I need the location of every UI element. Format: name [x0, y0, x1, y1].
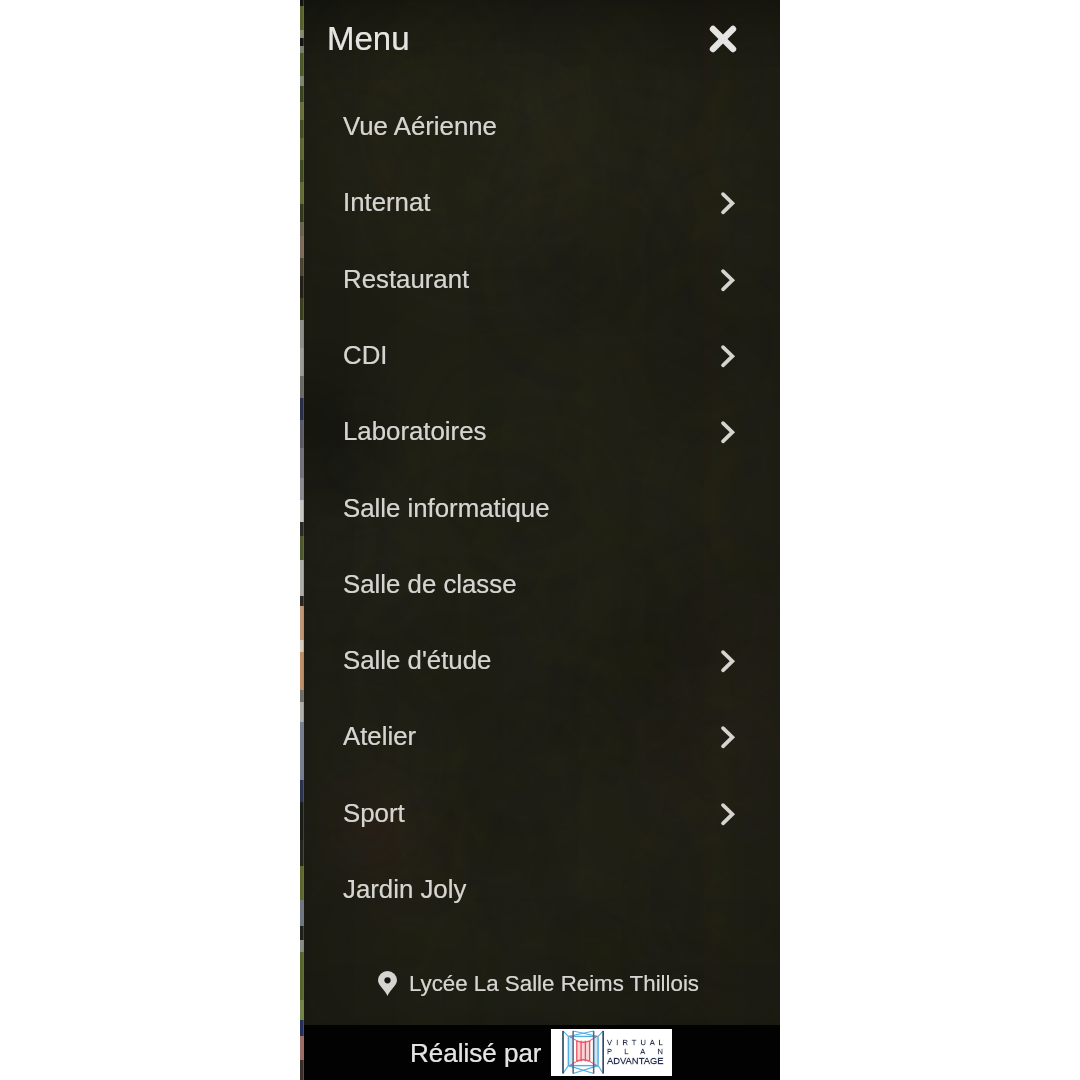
button[interactable]: Salle informatique — [304, 478, 780, 538]
staticText: Menu — [327, 20, 410, 57]
staticText: Laboratoires — [343, 417, 487, 446]
staticText: Lycée La Salle Reims Thillois — [409, 971, 699, 996]
staticText: Vue Aérienne — [343, 112, 497, 141]
staticText: P L A N — [607, 1047, 663, 1055]
button[interactable]: Virtual Plan Advantage — [551, 1029, 672, 1076]
button[interactable]: Vue Aérienne — [304, 96, 780, 156]
staticText: Jardin Joly — [343, 875, 467, 904]
staticText: Salle d'étude — [343, 646, 492, 675]
staticText: Réalisé par — [410, 1038, 542, 1067]
staticText: V I R T U A L — [607, 1038, 663, 1046]
button[interactable]: Laboratoires — [304, 401, 780, 461]
button[interactable]: Fermer le menu — [697, 13, 749, 65]
button[interactable]: Salle d'étude — [304, 630, 780, 690]
staticText: Sport — [343, 799, 405, 828]
staticText: Salle informatique — [343, 494, 550, 523]
staticText: Internat — [343, 188, 431, 217]
staticText: ADVANTAGE — [607, 1055, 664, 1066]
staticText: Atelier — [343, 722, 417, 751]
button[interactable]: Lycée La Salle Reims Thillois — [378, 960, 699, 1006]
button[interactable]: CDI — [304, 325, 780, 385]
staticText: Restaurant — [343, 265, 470, 294]
button[interactable]: Atelier — [304, 706, 780, 766]
button[interactable]: Salle de classe — [304, 554, 780, 614]
button[interactable]: Internat — [304, 172, 780, 232]
button[interactable]: Restaurant — [304, 249, 780, 309]
staticText: CDI — [343, 341, 388, 370]
button[interactable]: Sport — [304, 783, 780, 843]
staticText: Salle de classe — [343, 570, 517, 599]
button[interactable]: Jardin Joly — [304, 859, 780, 919]
